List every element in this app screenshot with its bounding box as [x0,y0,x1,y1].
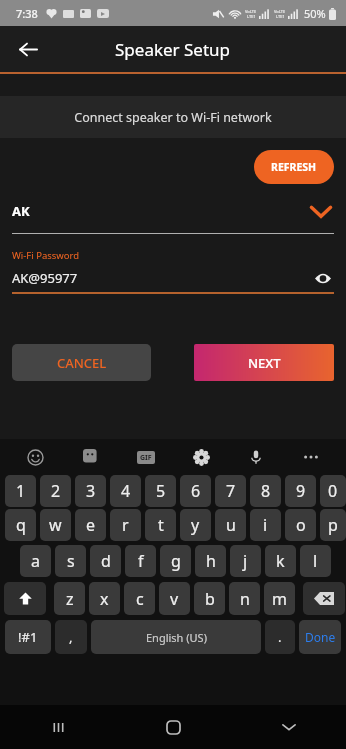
button[interactable]: 0 [320,475,346,507]
button[interactable]: 2 [40,475,71,507]
button[interactable]: AK [12,198,334,224]
button[interactable]: Hide keyboard [231,705,346,749]
staticText: x [100,588,109,610]
staticText: n [240,588,250,610]
button[interactable]: , [55,620,87,654]
button[interactable]: c [124,582,155,615]
staticText: y [191,514,200,536]
button[interactable]: v [159,582,190,615]
staticText: g [171,550,181,572]
button[interactable]: d [90,545,121,577]
button[interactable]: English (US) [91,620,261,654]
button[interactable]: Voice input [243,444,269,470]
button[interactable]: More options [298,444,324,470]
staticText: f [138,550,144,572]
button[interactable]: GIF [133,444,159,470]
button[interactable]: n [229,582,260,615]
button[interactable]: CANCEL [12,344,151,381]
button[interactable]: Settings [188,444,214,470]
button[interactable]: Home [116,705,231,749]
staticText: , [69,628,73,646]
staticText: . [278,628,282,646]
button[interactable]: 9 [285,475,316,507]
staticText: 0 [328,480,338,502]
staticText: CANCEL [57,354,107,372]
staticText: Done [305,629,336,645]
staticText: o [296,514,306,536]
staticText: 4 [121,480,131,502]
button[interactable]: a [20,545,51,577]
staticText: LTE1 [276,14,285,19]
button[interactable]: q [5,509,36,541]
button[interactable]: REFRESH [254,150,334,184]
button[interactable]: s [55,545,86,577]
button[interactable]: u [215,509,246,541]
staticText: 1 [16,480,26,502]
button[interactable]: NEXT [194,344,334,381]
button[interactable]: e [75,509,106,541]
staticText: k [276,550,285,572]
button[interactable]: i [250,509,281,541]
button[interactable]: 4 [110,475,141,507]
staticText: 7:38 [16,6,38,21]
staticText: v [170,588,179,610]
staticText: VoLTE [274,9,286,14]
staticText: q [16,514,26,536]
staticText: 6 [191,480,201,502]
button[interactable]: o [285,509,316,541]
button[interactable]: m [264,582,295,615]
button[interactable]: t [145,509,176,541]
button[interactable]: 6 [180,475,211,507]
button[interactable]: 3 [75,475,106,507]
button[interactable]: k [265,545,296,577]
button[interactable]: r [110,509,141,541]
button[interactable]: j [230,545,261,577]
staticText: t [158,514,164,536]
staticText: 7 [226,480,236,502]
button[interactable]: Done [299,620,341,654]
button[interactable]: Stickers [78,444,104,470]
staticText: c [136,588,144,610]
button[interactable]: x [89,582,120,615]
staticText: u [226,514,236,536]
button[interactable]: Show password [312,268,334,288]
staticText: Wi-Fi Password [12,249,80,262]
button[interactable]: 1 [5,475,36,507]
staticText: a [31,550,40,572]
button[interactable]: Shift [4,582,46,615]
button[interactable]: y [180,509,211,541]
button[interactable]: !#1 [5,620,51,654]
button[interactable]: l [300,545,331,577]
staticText: l [313,550,318,572]
staticText: 9 [296,480,306,502]
button[interactable]: Back [8,29,48,69]
staticText: d [101,550,111,572]
staticText: s [67,550,75,572]
staticText: 2 [51,480,61,502]
staticText: z [66,588,74,610]
button[interactable]: p [320,509,346,541]
staticText: w [49,514,62,536]
staticText: NEXT [248,354,281,372]
button[interactable]: f [125,545,156,577]
staticText: h [206,550,216,572]
button[interactable]: g [160,545,191,577]
button[interactable]: . [265,620,295,654]
staticText: i [263,514,268,536]
button[interactable]: 7 [215,475,246,507]
button[interactable]: h [195,545,226,577]
staticText: p [328,514,338,536]
button[interactable]: Backspace [303,582,345,615]
button[interactable]: Recents [0,705,116,749]
button[interactable]: b [194,582,225,615]
staticText: GIF [140,453,152,463]
button[interactable]: w [40,509,71,541]
button[interactable]: 8 [250,475,281,507]
button[interactable]: z [54,582,85,615]
button[interactable]: 5 [145,475,176,507]
staticText: AK@95977 [12,269,312,287]
staticText: j [243,550,248,572]
button[interactable]: Emoji [22,444,48,470]
staticText: 3 [86,480,96,502]
staticText: 8 [261,480,271,502]
